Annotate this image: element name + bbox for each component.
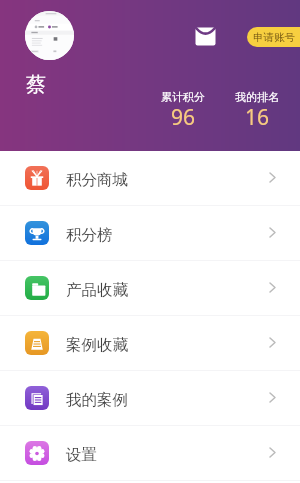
staticText: 设置 (66, 445, 97, 465)
button[interactable]: Avatar (25, 11, 74, 60)
staticText: 我的排名 (217, 90, 297, 104)
staticText: 积分榜 (66, 225, 113, 245)
button[interactable]: 申请账号 (247, 27, 300, 47)
button[interactable]: Messages (193, 24, 217, 48)
staticText: 积分商城 (66, 170, 128, 190)
button[interactable]: 积分商城 (0, 151, 300, 206)
button[interactable]: 设置 (0, 426, 300, 481)
button[interactable]: 积分榜 (0, 206, 300, 261)
button[interactable]: 产品收藏 (0, 261, 300, 316)
button[interactable]: 我的案例 (0, 371, 300, 426)
button[interactable]: 我的排名 (217, 86, 297, 136)
staticText: 累计积分 (143, 90, 223, 104)
staticText: 申请账号 (253, 31, 295, 44)
staticText: 产品收藏 (66, 280, 128, 300)
button[interactable]: 案例收藏 (0, 316, 300, 371)
staticText: 蔡 (26, 72, 46, 97)
staticText: 16 (217, 103, 297, 132)
staticText: 我的案例 (66, 390, 128, 410)
button[interactable]: 累计积分 (143, 86, 223, 136)
staticText: 案例收藏 (66, 335, 128, 355)
staticText: 96 (143, 103, 223, 132)
